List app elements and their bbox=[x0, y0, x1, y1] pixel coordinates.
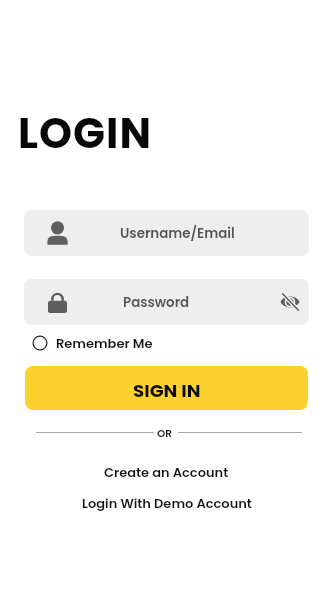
staticText: OR bbox=[157, 426, 172, 441]
button[interactable]: Login With Demo Account bbox=[0, 492, 333, 514]
staticText: Login With Demo Account bbox=[82, 494, 252, 512]
button[interactable]: Remember Me bbox=[32, 332, 153, 354]
staticText: Password bbox=[123, 293, 190, 312]
button[interactable]: Show password bbox=[272, 284, 308, 320]
button[interactable]: Username/Email bbox=[24, 210, 309, 256]
staticText: Username/Email bbox=[120, 224, 235, 243]
button[interactable]: Create an Account bbox=[0, 461, 333, 483]
button[interactable]: SIGN IN bbox=[25, 366, 308, 410]
staticText: SIGN IN bbox=[133, 378, 201, 404]
staticText: Remember Me bbox=[56, 334, 153, 352]
staticText: Create an Account bbox=[104, 463, 229, 481]
button[interactable]: Password bbox=[24, 279, 309, 325]
staticText: LOGIN bbox=[18, 104, 153, 163]
